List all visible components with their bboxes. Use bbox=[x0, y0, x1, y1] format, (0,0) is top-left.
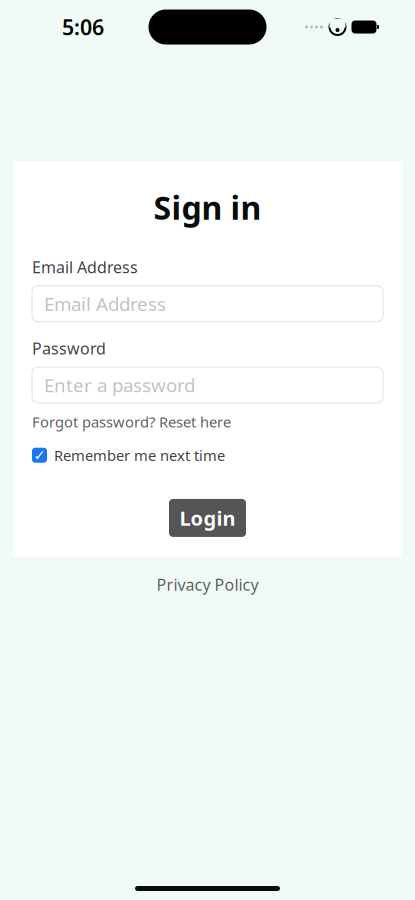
staticText: Remember me next time bbox=[54, 445, 225, 465]
button[interactable]: Forgot password? Reset here bbox=[13, 408, 250, 435]
staticText: Email Address bbox=[32, 256, 138, 278]
staticText: Forgot password? Reset here bbox=[32, 412, 231, 431]
staticText: Sign in bbox=[153, 186, 261, 228]
staticText: 5:06 bbox=[62, 13, 104, 41]
staticText: Enter a password bbox=[44, 373, 195, 397]
button[interactable]: ✓ bbox=[13, 441, 244, 469]
staticText: Email Address bbox=[44, 291, 166, 316]
button[interactable]: Privacy Policy bbox=[144, 557, 270, 601]
button[interactable]: Login bbox=[169, 499, 246, 537]
staticText: Login bbox=[179, 505, 235, 531]
staticText: ✓ bbox=[33, 447, 45, 463]
staticText: Privacy Policy bbox=[156, 574, 258, 595]
staticText: Password bbox=[32, 338, 106, 359]
